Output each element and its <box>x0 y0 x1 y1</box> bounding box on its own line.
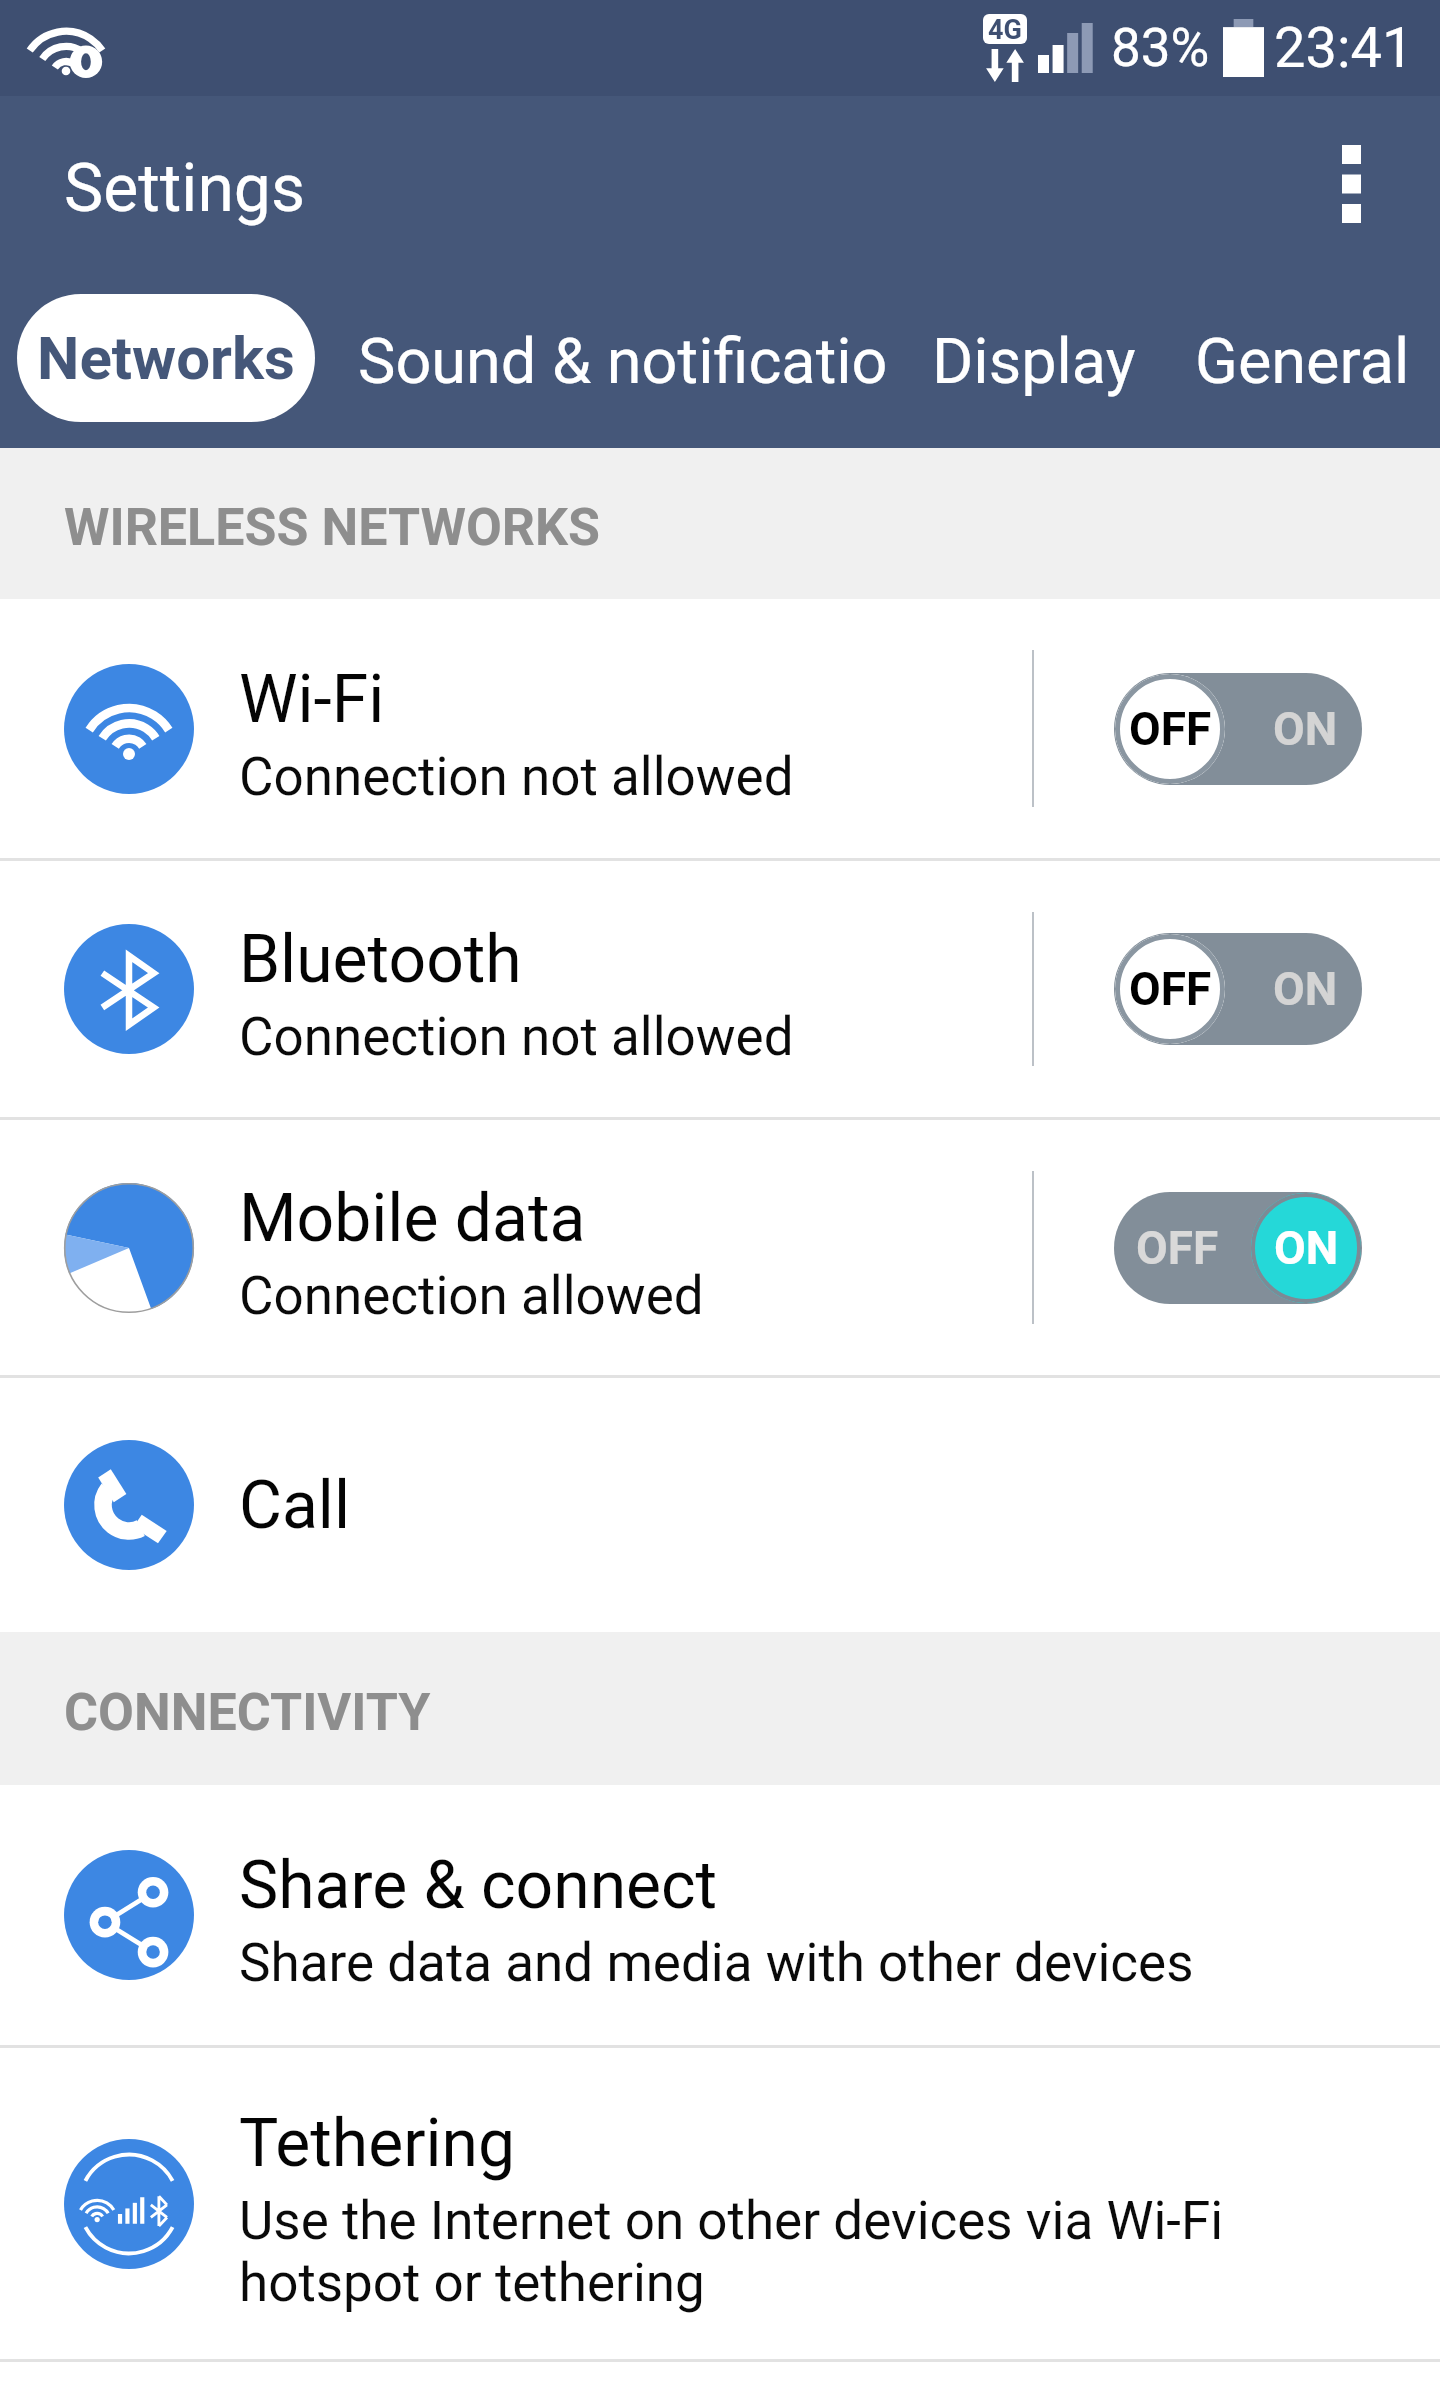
staticText: ON <box>1273 702 1338 756</box>
staticText: ON <box>1274 1221 1339 1275</box>
staticText: 23:41 <box>1274 15 1414 81</box>
staticText: Bluetooth <box>239 921 522 998</box>
button[interactable]: Share & connect <box>0 1785 1440 2045</box>
button[interactable]: Switch on <box>1114 1192 1362 1304</box>
staticText: Share data and media with other devices <box>239 1932 1194 1994</box>
button[interactable]: Wi-Fi <box>0 599 1440 858</box>
button[interactable]: Call <box>0 1378 1440 1632</box>
button[interactable]: Sound & notificatio <box>326 298 920 426</box>
staticText: Call <box>239 1467 350 1544</box>
button[interactable]: Switch off <box>1114 673 1362 785</box>
staticText: Tethering <box>239 2105 516 2182</box>
button[interactable]: Tethering <box>0 2048 1440 2359</box>
staticText: OFF <box>1129 962 1212 1016</box>
staticText: Sound & notificatio <box>358 325 888 399</box>
staticText: Mobile data <box>239 1180 586 1257</box>
staticText: Connection not allowed <box>239 746 794 808</box>
staticText: Connection not allowed <box>239 1006 794 1068</box>
button[interactable]: Switch off <box>1114 933 1362 1045</box>
button[interactable]: General <box>1163 298 1440 426</box>
staticText: Share & connect <box>239 1847 718 1924</box>
staticText: WIRELESS NETWORKS <box>64 497 601 558</box>
staticText: OFF <box>1136 1221 1219 1275</box>
staticText: 4G <box>988 14 1022 44</box>
staticText: Display <box>932 325 1136 399</box>
button[interactable]: Bluetooth <box>0 861 1440 1117</box>
staticText: Settings <box>64 150 305 227</box>
staticText: Wi-Fi <box>239 661 385 738</box>
staticText: CONNECTIVITY <box>64 1682 431 1743</box>
staticText: General <box>1195 325 1408 399</box>
staticText: Use the Internet on other devices via Wi… <box>239 2190 1230 2314</box>
button[interactable]: Mobile data <box>0 1120 1440 1375</box>
button[interactable]: Networks <box>17 294 315 422</box>
button[interactable]: More options <box>1291 124 1411 244</box>
staticText: Networks <box>37 323 295 393</box>
button[interactable]: Display <box>900 298 1168 426</box>
staticText: 83% <box>1111 17 1210 79</box>
staticText: Connection allowed <box>239 1265 704 1327</box>
staticText: ON <box>1273 962 1338 1016</box>
staticText: OFF <box>1129 702 1212 756</box>
